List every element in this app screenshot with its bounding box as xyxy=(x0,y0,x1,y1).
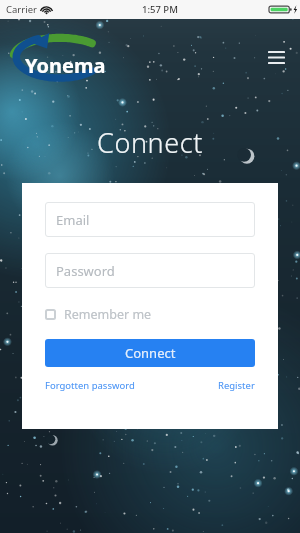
button[interactable]: Register xyxy=(218,379,255,392)
staticText: 1:57 PM xyxy=(142,3,178,16)
staticText: Connect xyxy=(125,344,176,362)
staticText: Password xyxy=(56,262,115,280)
staticText: Email xyxy=(56,211,90,229)
button[interactable]: Connect xyxy=(45,339,255,367)
staticText: Carrier xyxy=(6,3,37,16)
button[interactable]: Open menu xyxy=(259,40,293,74)
staticText: Remember me xyxy=(64,306,152,323)
button[interactable]: Remember me xyxy=(45,303,152,325)
button[interactable]: Forgotten password xyxy=(45,379,135,392)
staticText: Register xyxy=(218,379,255,392)
button[interactable]: Yonema home xyxy=(8,28,118,86)
button[interactable]: Email xyxy=(45,202,255,237)
button[interactable]: Password xyxy=(45,253,255,288)
staticText: Connect xyxy=(0,124,300,161)
staticText: Yonema xyxy=(25,52,106,79)
staticText: Forgotten password xyxy=(45,379,135,392)
